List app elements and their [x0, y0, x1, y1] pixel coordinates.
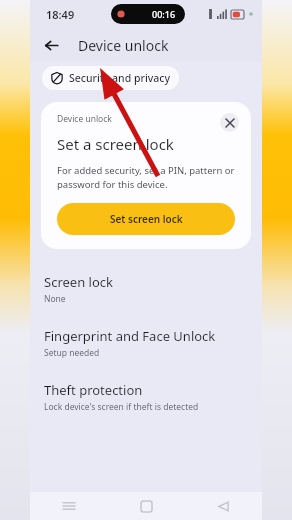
staticText: Device unlock	[57, 113, 112, 125]
button[interactable]: Home	[108, 492, 185, 520]
staticText: Screen lock	[44, 273, 113, 291]
staticText: Set screen lock	[110, 212, 183, 226]
staticText: None	[44, 293, 66, 305]
staticText: Setup needed	[44, 347, 100, 359]
button[interactable]: Back	[185, 492, 262, 520]
staticText: 00:16	[152, 8, 176, 20]
button[interactable]: Set screen lock	[57, 203, 235, 235]
staticText: Set a screen lock	[57, 134, 174, 154]
staticText: Lock device's screen if theft is detecte…	[44, 401, 199, 413]
staticText: For added security, set a PIN, pattern o…	[57, 164, 235, 191]
staticText: Fingerprint and Face Unlock	[44, 327, 216, 345]
button[interactable]: Back	[38, 32, 64, 58]
button[interactable]: Theft protection	[30, 379, 262, 415]
staticText: Theft protection	[44, 381, 143, 399]
button[interactable]: Screen lock	[30, 271, 262, 307]
staticText: Security and privacy	[69, 71, 170, 85]
button[interactable]: Recents	[30, 492, 108, 520]
button[interactable]: Fingerprint and Face Unlock	[30, 325, 262, 361]
staticText: 18:49	[46, 7, 75, 22]
staticText: Device unlock	[78, 36, 169, 55]
button[interactable]: Dismiss	[220, 113, 239, 132]
button[interactable]: Security and privacy	[42, 66, 179, 90]
